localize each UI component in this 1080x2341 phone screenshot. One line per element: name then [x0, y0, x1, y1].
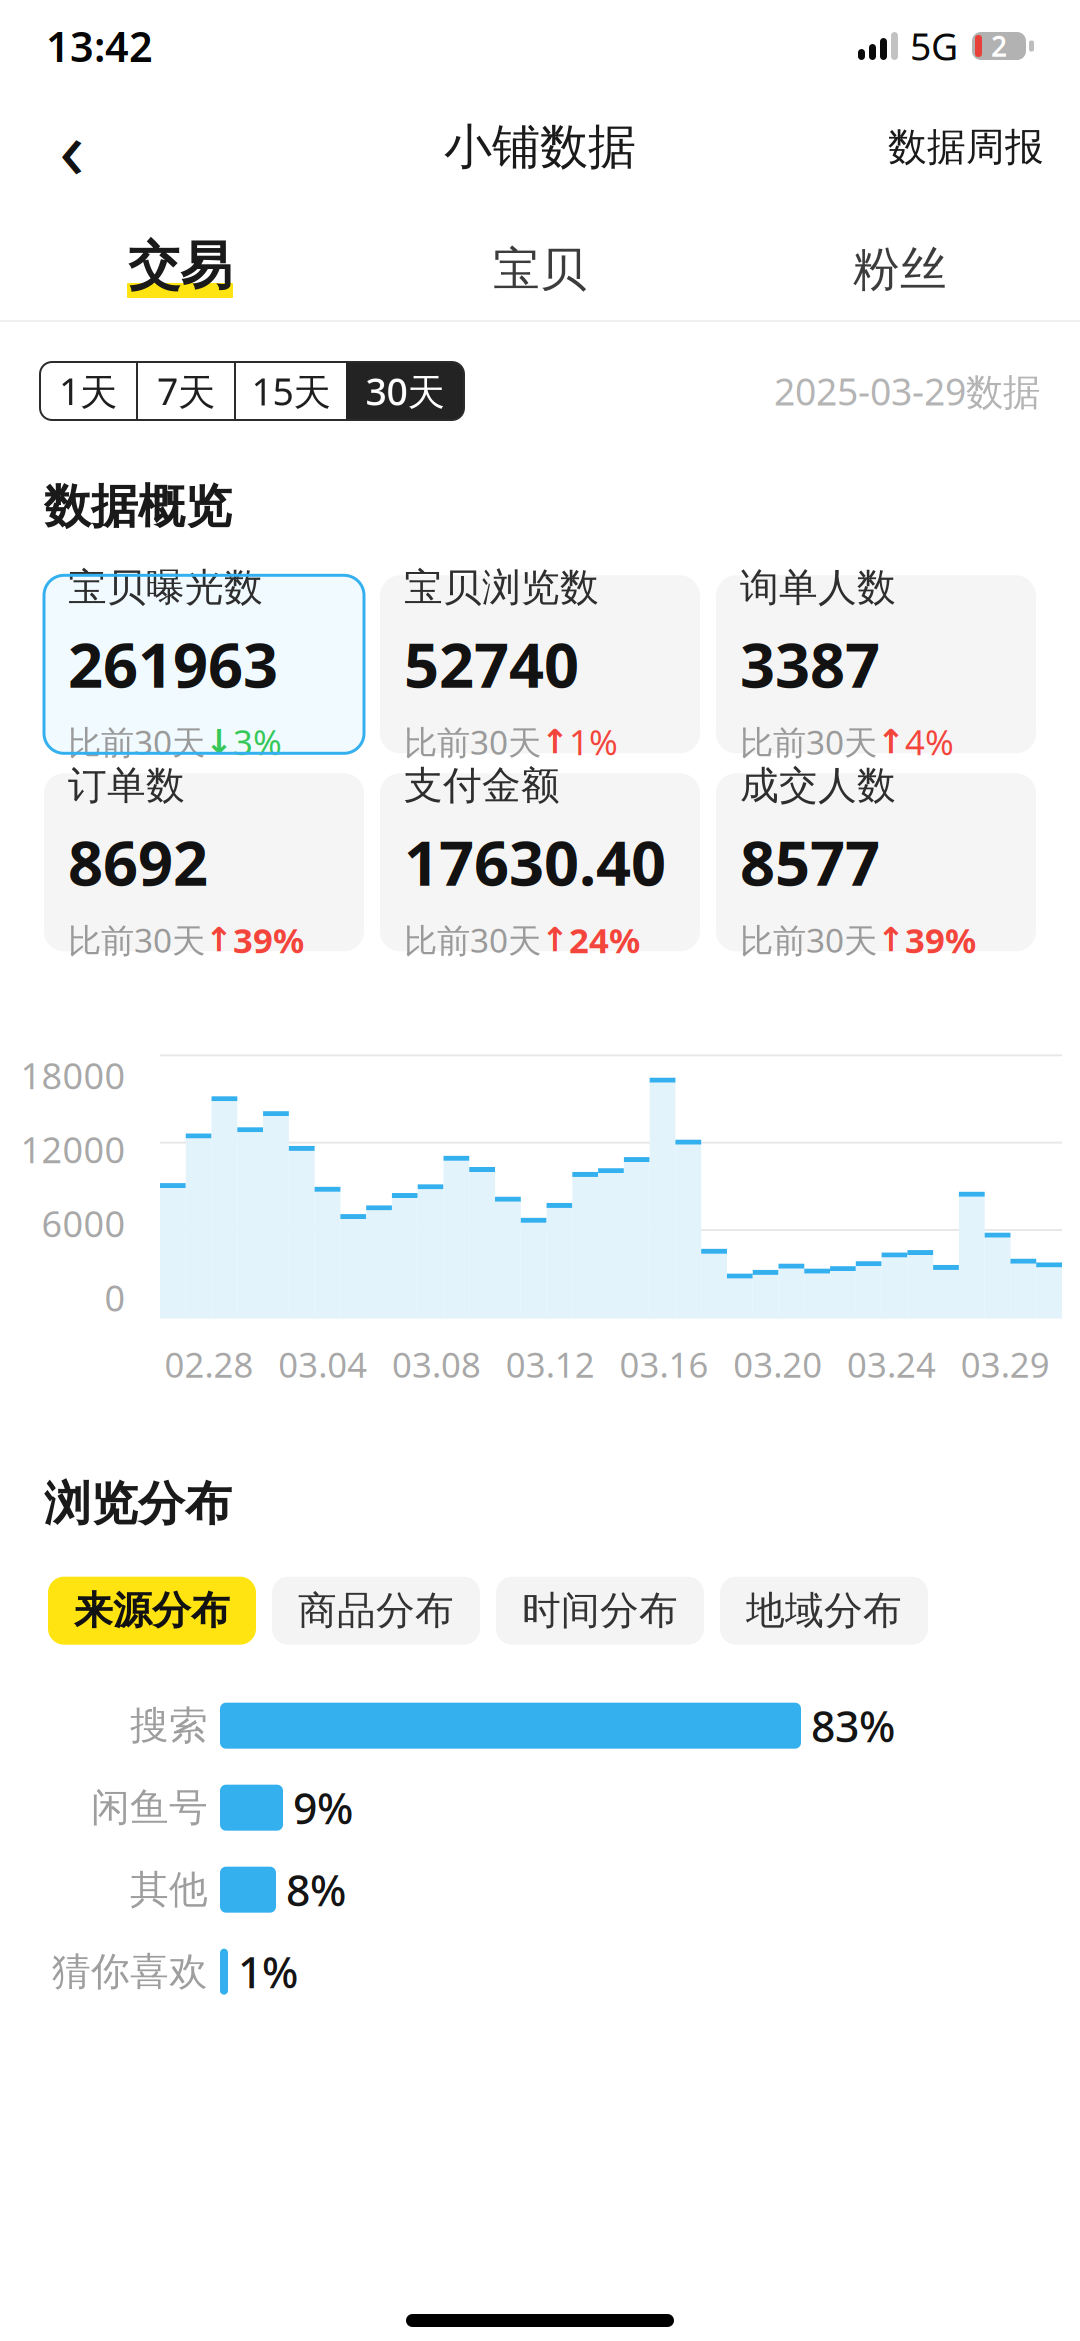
staticText: 6000 [41, 1199, 125, 1247]
button[interactable]: 支付金额 [380, 773, 700, 951]
staticText: 订单数 [68, 762, 185, 809]
staticText: 9% [293, 1779, 353, 1836]
button[interactable]: 粉丝 [720, 202, 1080, 320]
staticText: 搜索 [130, 1702, 208, 1749]
button[interactable]: 商品分布 [272, 1577, 480, 1645]
staticText: 1% [238, 1943, 298, 2000]
staticText: 03.12 [506, 1341, 595, 1387]
staticText: 03.08 [392, 1341, 481, 1387]
button[interactable]: 宝贝浏览数 [380, 575, 700, 753]
button[interactable]: 宝贝 [360, 202, 720, 320]
staticText: 浏览分布 [44, 1475, 232, 1533]
staticText: ↑ [541, 723, 569, 761]
staticText: 交易 [128, 234, 232, 298]
staticText: 52740 [404, 623, 579, 705]
staticText: 12000 [20, 1125, 125, 1173]
button[interactable]: 来源分布 [48, 1577, 256, 1645]
staticText: 时间分布 [522, 1587, 678, 1634]
staticText: 30天 [365, 366, 444, 416]
staticText: 其他 [130, 1866, 208, 1913]
staticText: 粉丝 [853, 241, 947, 298]
staticText: 成交人数 [740, 762, 896, 809]
staticText: 8692 [68, 821, 208, 903]
staticText: ↓ [205, 723, 233, 761]
staticText: ↑ [205, 921, 233, 959]
staticText: ↑ [877, 921, 905, 959]
button[interactable]: 订单数 [44, 773, 364, 951]
staticText: 宝贝浏览数 [404, 564, 599, 611]
staticText: 15天 [251, 366, 330, 416]
staticText: 03.24 [847, 1341, 936, 1387]
staticText: 03.04 [278, 1341, 367, 1387]
staticText: 商品分布 [298, 1587, 454, 1634]
staticText: 询单人数 [740, 564, 896, 611]
staticText: 比前30天 [404, 918, 541, 962]
button[interactable]: 1天 [40, 362, 136, 420]
staticText: 03.29 [961, 1341, 1050, 1387]
button[interactable]: 30天 [346, 362, 464, 420]
staticText: 3387 [740, 623, 880, 705]
staticText: 2025-03-29数据 [774, 366, 1040, 416]
staticText: 7天 [157, 366, 215, 416]
button[interactable]: 15天 [236, 362, 346, 420]
staticText: 17630.40 [404, 821, 666, 903]
button[interactable]: 7天 [138, 362, 234, 420]
staticText: 39% [905, 917, 976, 963]
button[interactable]: Back [30, 105, 114, 189]
staticText: 比前30天 [404, 720, 541, 764]
staticText: 比前30天 [68, 918, 205, 962]
staticText: 地域分布 [746, 1587, 902, 1634]
staticText: 8577 [740, 821, 880, 903]
button[interactable]: 成交人数 [716, 773, 1036, 951]
staticText: 13:42 [46, 19, 153, 73]
staticText: 5G [910, 21, 958, 71]
staticText: 8% [286, 1861, 346, 1918]
staticText: 来源分布 [74, 1587, 230, 1634]
button[interactable]: 交易 [0, 202, 360, 320]
staticText: 支付金额 [404, 762, 560, 809]
staticText: 比前30天 [740, 720, 877, 764]
staticText: 261963 [68, 623, 278, 705]
staticText: ↑ [877, 723, 905, 761]
staticText: 83% [811, 1697, 895, 1754]
staticText: 数据概览 [44, 478, 232, 535]
staticText: 比前30天 [740, 918, 877, 962]
button[interactable]: 地域分布 [720, 1577, 928, 1645]
staticText: 39% [233, 917, 304, 963]
staticText: 1天 [59, 366, 117, 416]
button[interactable]: 宝贝曝光数 [44, 575, 364, 753]
staticText: 2 [991, 27, 1007, 65]
staticText: 03.20 [733, 1341, 822, 1387]
staticText: 03.16 [619, 1341, 708, 1387]
staticText: 3% [233, 719, 282, 765]
staticText: ↑ [541, 921, 569, 959]
staticText: 18000 [20, 1051, 125, 1099]
staticText: 4% [905, 719, 954, 765]
staticText: 闲鱼号 [91, 1784, 208, 1831]
button[interactable]: 时间分布 [496, 1577, 704, 1645]
staticText: 宝贝曝光数 [68, 564, 263, 611]
staticText: ‹ [59, 92, 85, 202]
staticText: 小铺数据 [444, 117, 636, 176]
button[interactable]: 数据周报 [882, 105, 1050, 189]
staticText: 宝贝 [493, 241, 587, 298]
staticText: 1% [569, 719, 618, 765]
staticText: 猜你喜欢 [52, 1948, 208, 1995]
staticText: 数据周报 [888, 123, 1044, 171]
button[interactable]: 询单人数 [716, 575, 1036, 753]
staticText: 24% [569, 917, 640, 963]
staticText: 0 [104, 1273, 125, 1321]
staticText: 比前30天 [68, 720, 205, 764]
staticText: 02.28 [164, 1341, 253, 1387]
